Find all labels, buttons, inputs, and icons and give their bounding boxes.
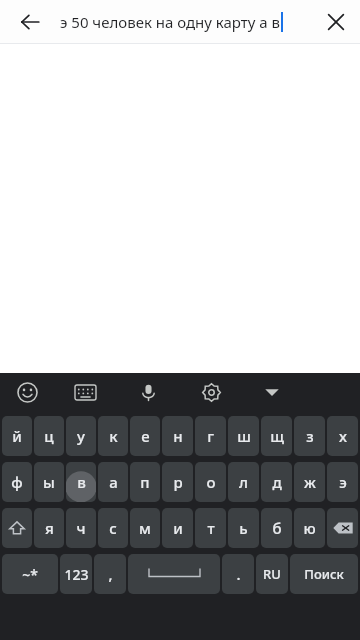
button[interactable]: г <box>195 416 226 456</box>
button[interactable]: ф <box>2 462 32 502</box>
button[interactable]: Clear <box>312 0 360 44</box>
button[interactable]: ш <box>228 416 259 456</box>
staticText: 123 <box>64 565 89 584</box>
button[interactable]: Back <box>0 0 60 44</box>
button[interactable]: в <box>66 462 96 502</box>
staticText: й <box>12 426 22 446</box>
staticText: р <box>173 472 183 492</box>
button[interactable]: щ <box>261 416 292 456</box>
button[interactable]: ч <box>66 508 96 548</box>
button[interactable]: RU <box>256 554 288 594</box>
button[interactable]: м <box>130 508 160 548</box>
button[interactable]: э 50 человек на одну карту а в <box>60 0 312 44</box>
staticText: , <box>108 564 113 584</box>
button[interactable]: Поиск <box>290 554 358 594</box>
button[interactable]: а <box>98 462 128 502</box>
staticText: т <box>207 518 215 538</box>
staticText: ь <box>239 518 248 538</box>
staticText: ш <box>237 426 251 446</box>
staticText: к <box>109 426 118 446</box>
staticText: я <box>45 518 54 538</box>
button[interactable]: Space <box>128 554 220 594</box>
button[interactable]: й <box>2 416 32 456</box>
staticText: х <box>339 426 347 446</box>
button[interactable]: ь <box>228 508 259 548</box>
button[interactable]: Settings <box>180 373 242 411</box>
button[interactable]: у <box>66 416 96 456</box>
button[interactable]: п <box>130 462 160 502</box>
button[interactable]: с <box>98 508 128 548</box>
button[interactable]: ы <box>34 462 64 502</box>
staticText: и <box>173 518 183 538</box>
staticText: с <box>109 518 117 538</box>
staticText: н <box>173 426 183 446</box>
button[interactable]: я <box>34 508 64 548</box>
staticText: п <box>140 472 150 492</box>
staticText: з <box>306 426 314 446</box>
staticText: . <box>236 564 241 584</box>
staticText: ы <box>43 472 55 492</box>
button[interactable]: з <box>294 416 325 456</box>
staticText: ж <box>304 472 316 492</box>
staticText: ф <box>11 472 23 492</box>
button[interactable]: х <box>327 416 358 456</box>
staticText: л <box>239 472 248 492</box>
staticText: ю <box>303 518 316 538</box>
button[interactable]: ~* <box>2 554 58 594</box>
staticText: Поиск <box>304 565 344 583</box>
staticText: ~* <box>22 565 38 584</box>
staticText: о <box>206 472 216 492</box>
button[interactable]: о <box>195 462 226 502</box>
button[interactable]: . <box>222 554 254 594</box>
staticText: д <box>272 472 282 492</box>
staticText: г <box>207 426 214 446</box>
staticText: щ <box>270 426 284 446</box>
button[interactable]: н <box>162 416 193 456</box>
staticText: RU <box>263 565 281 583</box>
staticText: м <box>139 518 151 538</box>
staticText: э <box>339 472 347 492</box>
button[interactable]: Shift <box>2 508 32 548</box>
button[interactable]: Voice input <box>117 373 180 411</box>
button[interactable]: б <box>261 508 292 548</box>
staticText: а <box>109 472 118 492</box>
staticText: е <box>141 426 150 446</box>
button[interactable]: , <box>94 554 126 594</box>
button[interactable]: и <box>162 508 193 548</box>
button[interactable]: е <box>130 416 160 456</box>
button[interactable]: ж <box>294 462 325 502</box>
staticText: ц <box>44 426 54 446</box>
button[interactable]: л <box>228 462 259 502</box>
staticText: у <box>77 426 85 446</box>
button[interactable]: More <box>242 373 302 411</box>
button[interactable]: д <box>261 462 292 502</box>
staticText: ч <box>76 518 86 538</box>
button[interactable]: р <box>162 462 193 502</box>
staticText: б <box>272 518 282 538</box>
button[interactable]: к <box>98 416 128 456</box>
button[interactable]: э <box>327 462 358 502</box>
button[interactable]: т <box>195 508 226 548</box>
staticText: э 50 человек на одну карту а в <box>60 12 281 32</box>
staticText: в <box>77 472 86 492</box>
button[interactable]: Emoji <box>0 373 54 411</box>
button[interactable]: Keyboard layout <box>54 373 117 411</box>
button[interactable]: Backspace <box>327 508 358 548</box>
button[interactable]: ц <box>34 416 64 456</box>
button[interactable]: 123 <box>60 554 92 594</box>
button[interactable]: ю <box>294 508 325 548</box>
